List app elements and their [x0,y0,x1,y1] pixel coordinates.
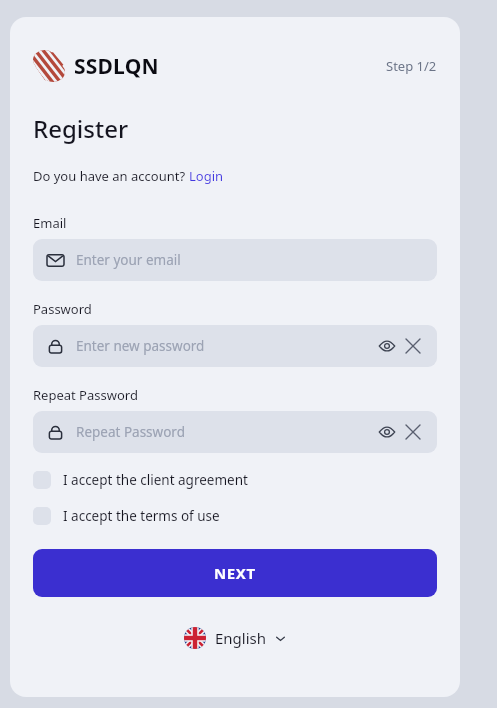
button[interactable]: Clear [401,420,425,444]
button[interactable]: Clear [401,334,425,358]
button[interactable]: Login [189,167,224,185]
button[interactable]: Enter your email [33,239,437,281]
staticText: I accept the terms of use [63,507,220,525]
staticText: NEXT [214,563,256,583]
staticText: Email [33,214,67,232]
button[interactable]: Enter new password [33,325,437,367]
staticText: Repeat Password [76,423,185,441]
button[interactable]: English [178,623,292,653]
staticText: Enter new password [76,337,205,355]
staticText: Enter your email [76,251,181,269]
staticText: Repeat Password [33,386,138,404]
button[interactable]: I accept the terms of use [33,507,437,525]
staticText: English [215,628,267,648]
staticText: SSDLQN [74,52,159,81]
staticText: Step 1/2 [386,57,437,75]
staticText: I accept the client agreement [63,471,248,489]
staticText: Do you have an account? [33,167,189,185]
staticText: Login [189,167,224,185]
button[interactable]: I accept the client agreement [33,471,437,489]
button[interactable]: Repeat Password [33,411,437,453]
staticText: Password [33,300,92,318]
button[interactable]: Show password [375,420,399,444]
button[interactable]: NEXT [33,549,437,597]
button[interactable]: Show password [375,334,399,358]
staticText: Register [33,112,129,145]
